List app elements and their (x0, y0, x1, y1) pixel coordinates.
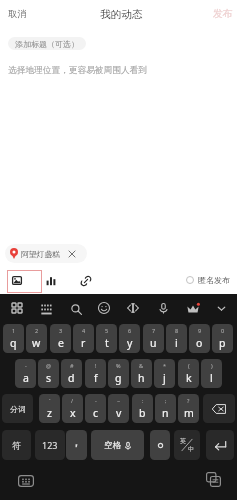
button[interactable]: 6 (119, 324, 140, 353)
staticText: c (93, 406, 99, 420)
staticText: r (81, 336, 86, 350)
button[interactable]: 分词 (2, 394, 33, 423)
staticText: : (142, 397, 144, 404)
button[interactable]: 符 (2, 430, 31, 460)
staticText: m (184, 406, 194, 420)
staticText: 1 (12, 327, 16, 334)
button[interactable]: ; (155, 394, 176, 423)
button[interactable]: 2 (26, 324, 47, 353)
button[interactable]: Backspace (203, 394, 235, 423)
staticText: ? (187, 397, 190, 404)
button[interactable]: Add image (7, 270, 42, 293)
button[interactable]: 发布 (213, 8, 233, 20)
button[interactable]: Apps (7, 298, 27, 318)
button[interactable]: Emoji (94, 298, 114, 318)
button[interactable]: 3 (50, 324, 71, 353)
staticText: % (116, 362, 121, 369)
button[interactable]: - (85, 394, 106, 423)
button[interactable]: : (132, 394, 153, 423)
button[interactable]: ( (178, 359, 199, 388)
staticText: h (138, 371, 145, 385)
button[interactable]: & (131, 359, 152, 388)
button[interactable]: 1 (3, 324, 24, 353)
button[interactable]: Period (150, 430, 170, 460)
staticText: ! (95, 362, 97, 369)
staticText: 3 (59, 327, 63, 334)
staticText: n (162, 406, 169, 420)
button[interactable]: Switch language (174, 430, 200, 460)
button[interactable]: 阿望灯盏糕 (5, 244, 87, 263)
staticText: 添加标题（可选） (15, 39, 79, 49)
button[interactable]: Clipboard (203, 469, 224, 490)
staticText: - (25, 362, 27, 369)
button[interactable]: Comma (66, 430, 87, 460)
button[interactable]: @ (38, 359, 59, 388)
button[interactable]: Keyboard (36, 299, 56, 319)
button[interactable]: ` (39, 394, 60, 423)
button[interactable]: ) (201, 359, 222, 388)
button[interactable]: Keyboard settings (15, 470, 36, 491)
button[interactable]: Poll (42, 272, 60, 290)
button[interactable]: Premium (183, 299, 203, 319)
staticText: 6 (128, 327, 132, 334)
button[interactable]: 空格 (91, 430, 144, 460)
button[interactable]: 7 (143, 324, 164, 353)
staticText: ~ (117, 397, 121, 404)
button[interactable]: - (15, 359, 36, 388)
staticText: x (70, 406, 76, 420)
staticText: # (70, 362, 74, 369)
staticText: ( (188, 362, 190, 369)
staticText: 阿望灯盏糕 (21, 249, 60, 259)
staticText: 发布 (213, 8, 233, 20)
staticText: ` (49, 397, 51, 404)
button[interactable]: Link (77, 272, 95, 290)
staticText: 分词 (10, 404, 26, 414)
staticText: / (71, 397, 74, 404)
staticText: * (163, 362, 167, 369)
staticText: - (95, 397, 97, 404)
button[interactable]: Search (66, 299, 86, 319)
button[interactable]: 5 (96, 324, 117, 353)
button[interactable]: ~ (108, 394, 129, 423)
staticText: & (139, 362, 144, 369)
button[interactable]: 4 (73, 324, 94, 353)
button[interactable]: 123 (35, 430, 65, 460)
button[interactable]: Voice input (153, 298, 173, 318)
staticText: 我的动态 (100, 8, 143, 21)
button[interactable]: 9 (189, 324, 210, 353)
button[interactable]: 添加标题（可选） (8, 37, 86, 50)
button[interactable]: ! (85, 359, 106, 388)
button[interactable]: Collapse (211, 298, 231, 318)
button[interactable]: Symbols (123, 298, 143, 318)
staticText: y (127, 336, 133, 350)
button[interactable]: * (154, 359, 175, 388)
staticText: z (47, 406, 52, 420)
staticText: 7 (152, 327, 156, 334)
staticText: w (32, 336, 41, 350)
button[interactable]: ? (178, 394, 199, 423)
staticText: o (196, 336, 203, 350)
button[interactable]: 匿名发布 (184, 272, 232, 288)
button[interactable]: # (61, 359, 82, 388)
button[interactable]: % (108, 359, 129, 388)
staticText: t (105, 336, 109, 350)
staticText: @ (46, 362, 51, 369)
staticText: 2 (35, 327, 39, 334)
button[interactable]: 8 (166, 324, 187, 353)
staticText: i (175, 336, 178, 350)
other: Remove location (68, 250, 76, 258)
staticText: 符 (12, 440, 21, 451)
staticText: j (163, 371, 166, 385)
button[interactable]: / (62, 394, 83, 423)
staticText: d (68, 371, 75, 385)
button[interactable]: 取消 (8, 8, 27, 20)
staticText: 9 (198, 327, 202, 334)
button[interactable]: 0 (212, 324, 233, 353)
staticText: k (186, 371, 192, 385)
button[interactable]: Enter (206, 430, 234, 460)
staticText: e (58, 336, 64, 350)
staticText: ; (165, 397, 167, 404)
staticText: b (139, 406, 146, 420)
staticText: v (116, 406, 122, 420)
staticText: 英 (180, 437, 186, 445)
